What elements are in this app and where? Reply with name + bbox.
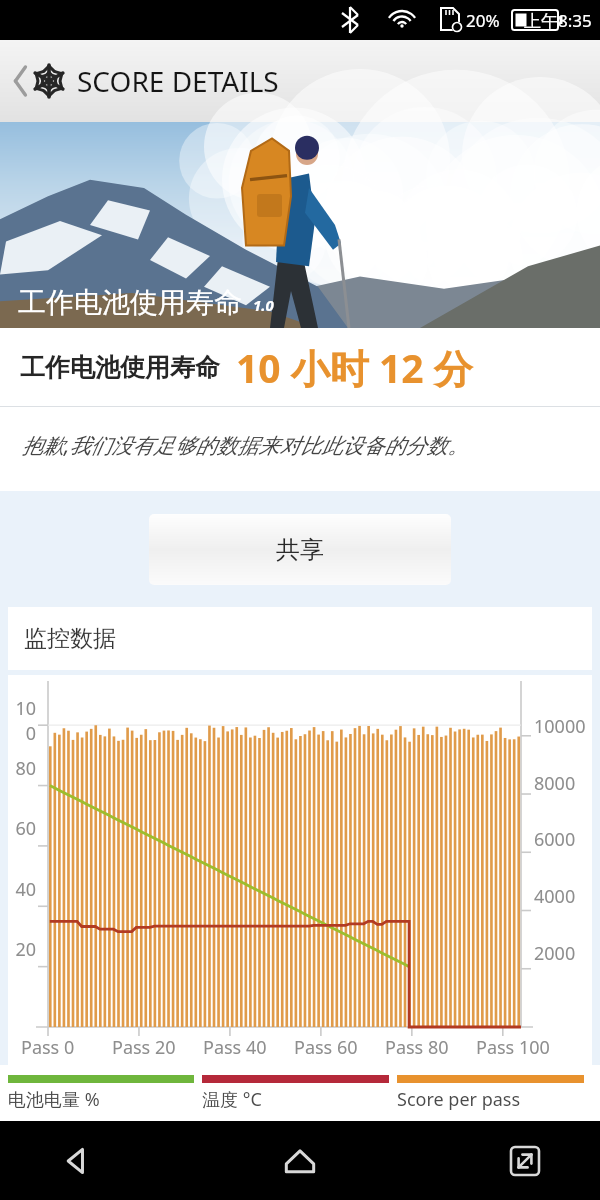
staticText: Pass 0 (21, 1035, 75, 1060)
staticText: 8000 (534, 771, 576, 796)
staticText: 2000 (534, 941, 576, 966)
staticText: 80 (8, 756, 36, 781)
staticText: 1.0 (253, 295, 274, 315)
button[interactable]: Back (6, 59, 279, 103)
staticText: 10 小时 12 分 (236, 341, 473, 394)
button[interactable]: Home (255, 1126, 345, 1196)
staticText: 20 (8, 937, 36, 962)
staticText: Pass 100 (476, 1035, 550, 1060)
staticText: 10000 (534, 714, 586, 739)
staticText: 抱歉,我们没有足够的数据来对比此设备的分数。 (22, 431, 469, 460)
button[interactable]: 共享 (149, 514, 451, 585)
staticText: 电池电量 % (8, 1087, 100, 1112)
staticText: 20% (466, 9, 500, 32)
button[interactable]: Recent apps (480, 1126, 570, 1196)
staticText: Pass 20 (112, 1035, 176, 1060)
staticText: 上午8:35 (524, 9, 592, 32)
staticText: 温度 °C (202, 1087, 262, 1112)
staticText: 6000 (534, 827, 576, 852)
staticText: 60 (8, 816, 36, 841)
staticText: Pass 40 (203, 1035, 267, 1060)
staticText: Pass 80 (385, 1035, 449, 1060)
button[interactable]: Back (30, 1126, 120, 1196)
staticText: 监控数据 (24, 624, 116, 653)
staticText: 工作电池使用寿命 (20, 352, 220, 383)
staticText: Pass 60 (294, 1035, 358, 1060)
staticText: Score per pass (397, 1087, 521, 1112)
staticText: 100 (8, 696, 36, 746)
staticText: 工作电池使用寿命 (18, 285, 242, 320)
staticText: SCORE DETAILS (77, 62, 279, 100)
staticText: 4000 (534, 884, 576, 909)
staticText: 共享 (276, 535, 324, 565)
staticText: 40 (8, 877, 36, 902)
